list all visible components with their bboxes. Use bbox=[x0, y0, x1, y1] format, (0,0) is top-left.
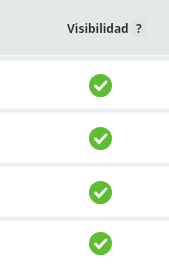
button[interactable]: Visible bbox=[0, 168, 169, 216]
other: Visible bbox=[89, 74, 112, 97]
staticText: ? bbox=[136, 20, 142, 36]
button[interactable]: Visibilidad bbox=[0, 0, 169, 55]
other: Visible bbox=[89, 232, 112, 255]
other: Visible bbox=[89, 127, 112, 150]
button[interactable]: Visible bbox=[0, 62, 169, 108]
button[interactable]: Visible bbox=[0, 114, 169, 162]
other: Visible bbox=[89, 181, 112, 204]
button[interactable]: Ayuda bbox=[132, 19, 146, 37]
button[interactable]: Visible bbox=[0, 222, 169, 265]
staticText: Visibilidad bbox=[67, 20, 129, 36]
